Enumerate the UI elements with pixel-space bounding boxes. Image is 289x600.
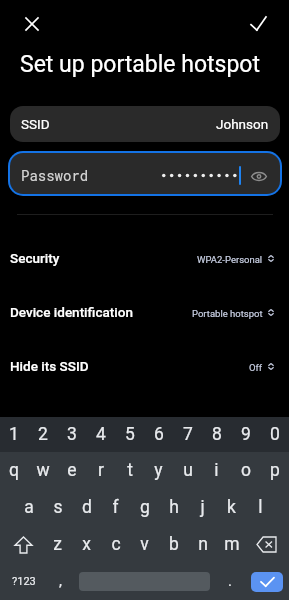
staticText: f: [112, 497, 119, 518]
staticText: m: [224, 534, 240, 555]
staticText: c: [111, 534, 121, 555]
button[interactable]: ?123: [0, 563, 48, 600]
button[interactable]: h: [159, 489, 188, 526]
button[interactable]: i: [202, 452, 231, 489]
staticText: .: [228, 572, 232, 590]
staticText: 7: [183, 424, 193, 445]
button[interactable]: c: [101, 526, 130, 563]
button[interactable]: .: [215, 563, 245, 600]
button[interactable]: d: [72, 489, 101, 526]
button[interactable]: f: [101, 489, 130, 526]
staticText: WPA2-Personal: [197, 254, 263, 265]
staticText: 3: [67, 424, 77, 445]
button[interactable]: n: [188, 526, 217, 563]
button[interactable]: Enter: [240, 563, 289, 600]
button[interactable]: l: [246, 489, 275, 526]
button[interactable]: Device identification: [0, 301, 289, 323]
button[interactable]: Hide its SSID: [0, 355, 289, 377]
staticText: h: [169, 497, 179, 518]
staticText: v: [140, 534, 149, 555]
staticText: n: [198, 534, 208, 555]
button[interactable]: q: [0, 452, 28, 489]
button[interactable]: 8: [202, 417, 231, 452]
button[interactable]: t: [115, 452, 144, 489]
staticText: Set up portable hotspot: [20, 51, 260, 78]
staticText: r: [98, 460, 104, 481]
staticText: ,: [59, 572, 62, 590]
staticText: x: [82, 534, 91, 555]
button[interactable]: Show password: [246, 163, 272, 189]
staticText: SSID: [21, 116, 50, 132]
staticText: i: [214, 460, 219, 481]
button[interactable]: ,: [45, 563, 76, 600]
button[interactable]: k: [217, 489, 246, 526]
staticText: ?123: [12, 575, 36, 588]
button[interactable]: m: [217, 526, 246, 563]
staticText: k: [227, 497, 236, 518]
staticText: 5: [125, 424, 135, 445]
staticText: w: [36, 460, 50, 481]
staticText: Portable hotspot: [192, 308, 263, 319]
staticText: Off: [249, 362, 263, 373]
button[interactable]: v: [130, 526, 159, 563]
button[interactable]: b: [159, 526, 188, 563]
button[interactable]: 2: [28, 417, 57, 452]
button[interactable]: Password: [10, 153, 280, 194]
button[interactable]: Space: [79, 563, 210, 600]
staticText: Security: [10, 250, 60, 266]
staticText: o: [241, 460, 251, 481]
button[interactable]: s: [43, 489, 72, 526]
button[interactable]: Close: [19, 11, 44, 36]
button[interactable]: 4: [86, 417, 115, 452]
staticText: d: [82, 497, 92, 518]
staticText: Johnson: [216, 116, 269, 132]
button[interactable]: Shift: [0, 526, 43, 563]
button[interactable]: 9: [231, 417, 260, 452]
staticText: l: [258, 497, 263, 518]
button[interactable]: o: [231, 452, 260, 489]
button[interactable]: j: [188, 489, 217, 526]
staticText: 1: [9, 424, 19, 445]
staticText: 8: [212, 424, 222, 445]
button[interactable]: a: [14, 489, 43, 526]
button[interactable]: Security: [0, 247, 289, 269]
button[interactable]: 5: [115, 417, 144, 452]
staticText: Device identification: [10, 304, 133, 320]
staticText: g: [140, 497, 150, 518]
staticText: s: [53, 497, 63, 518]
staticText: Password: [21, 166, 89, 184]
button[interactable]: u: [173, 452, 202, 489]
staticText: 9: [241, 424, 251, 445]
button[interactable]: p: [260, 452, 289, 489]
staticText: y: [154, 460, 163, 481]
button[interactable]: 6: [144, 417, 173, 452]
staticText: Hide its SSID: [10, 358, 89, 374]
button[interactable]: Backspace: [246, 526, 289, 563]
button[interactable]: e: [57, 452, 86, 489]
button[interactable]: r: [86, 452, 115, 489]
staticText: b: [169, 534, 179, 555]
button[interactable]: x: [72, 526, 101, 563]
staticText: 2: [38, 424, 48, 445]
button[interactable]: 3: [57, 417, 86, 452]
staticText: 0: [270, 424, 280, 445]
staticText: e: [67, 460, 77, 481]
button[interactable]: y: [144, 452, 173, 489]
button[interactable]: SSID: [10, 106, 280, 142]
button[interactable]: z: [43, 526, 72, 563]
button[interactable]: 1: [0, 417, 28, 452]
staticText: q: [9, 460, 19, 481]
button[interactable]: Done: [246, 11, 271, 36]
button[interactable]: g: [130, 489, 159, 526]
staticText: a: [24, 497, 34, 518]
button[interactable]: w: [28, 452, 57, 489]
staticText: 6: [154, 424, 164, 445]
button[interactable]: 7: [173, 417, 202, 452]
staticText: z: [53, 534, 62, 555]
staticText: j: [200, 497, 205, 518]
staticText: u: [183, 460, 193, 481]
staticText: t: [127, 460, 133, 481]
button[interactable]: 0: [260, 417, 289, 452]
staticText: p: [270, 460, 280, 481]
staticText: 4: [96, 424, 106, 445]
